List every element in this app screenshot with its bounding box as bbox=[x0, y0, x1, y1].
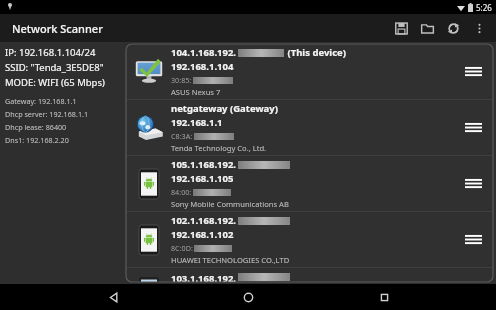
button[interactable]: Home bbox=[225, 284, 271, 310]
staticText: Dns1: 192.168.2.20 bbox=[5, 135, 69, 145]
staticText: 104.1.168.192. bbox=[171, 46, 237, 59]
button[interactable]: Device menu bbox=[459, 108, 487, 148]
staticText: HUAWEI TECHNOLOGIES CO.,LTD bbox=[171, 255, 290, 265]
staticText: 192.168.1.102 bbox=[171, 228, 234, 241]
staticText: Tenda Technology Co., Ltd. bbox=[171, 143, 267, 153]
staticText: ASUS Nexus 7 bbox=[171, 87, 221, 97]
staticText: MODE: WIFI (65 Mbps) bbox=[5, 76, 105, 89]
button[interactable]: Save bbox=[388, 14, 414, 42]
staticText: Sony Mobile Communications AB bbox=[171, 199, 289, 209]
staticText: C8:3A: bbox=[171, 131, 193, 141]
staticText: 105.1.168.192. bbox=[171, 158, 237, 171]
staticText: 102.1.168.192. bbox=[171, 214, 237, 227]
staticText: 8C:0D: bbox=[171, 243, 193, 253]
button[interactable]: 102.1.168.192. bbox=[126, 212, 493, 267]
button[interactable]: Device menu bbox=[459, 52, 487, 92]
button[interactable]: Back bbox=[90, 284, 136, 310]
button[interactable]: Refresh bbox=[440, 14, 466, 42]
button[interactable]: Recent apps bbox=[361, 284, 407, 310]
staticText: (This device) bbox=[285, 46, 346, 59]
button[interactable]: Device menu bbox=[459, 220, 487, 260]
staticText: 192.168.1.1 bbox=[171, 116, 223, 129]
staticText: Network Scanner bbox=[12, 21, 103, 36]
button[interactable]: 105.1.168.192. bbox=[126, 156, 493, 211]
staticText: 5:26 bbox=[476, 2, 492, 13]
staticText: Gateway: 192.168.1.1 bbox=[5, 96, 77, 106]
staticText: netgateway (Gateway) bbox=[171, 102, 278, 115]
button[interactable]: More options bbox=[466, 14, 492, 42]
staticText: 192.168.1.104 bbox=[171, 60, 234, 73]
button[interactable]: 103.1.168.192. bbox=[126, 268, 493, 282]
staticText: 30:85: bbox=[171, 75, 192, 85]
staticText: Dhcp server: 192.168.1.1 bbox=[5, 109, 89, 119]
staticText: SSID: "Tenda_3E5DE8" bbox=[5, 61, 104, 74]
button[interactable]: Device menu bbox=[459, 164, 487, 204]
staticText: Dhcp lease: 86400 bbox=[5, 122, 67, 132]
button[interactable]: netgateway (Gateway) bbox=[126, 100, 493, 155]
staticText: 192.168.1.105 bbox=[171, 172, 234, 185]
staticText: 103.1.168.192. bbox=[171, 272, 237, 282]
staticText: 84:00: bbox=[171, 187, 192, 197]
staticText: IP: 192.168.1.104/24 bbox=[5, 46, 96, 59]
button[interactable]: Open folder bbox=[414, 14, 440, 42]
button[interactable]: 104.1.168.192. bbox=[126, 44, 493, 99]
